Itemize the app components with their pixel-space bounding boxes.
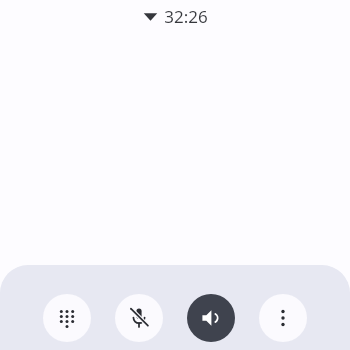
staticText: 32:26 (164, 5, 208, 28)
button[interactable]: Dialpad (43, 294, 91, 342)
button[interactable]: Speaker (187, 294, 235, 342)
button[interactable]: Mute microphone (115, 294, 163, 342)
button[interactable]: More options (259, 294, 307, 342)
